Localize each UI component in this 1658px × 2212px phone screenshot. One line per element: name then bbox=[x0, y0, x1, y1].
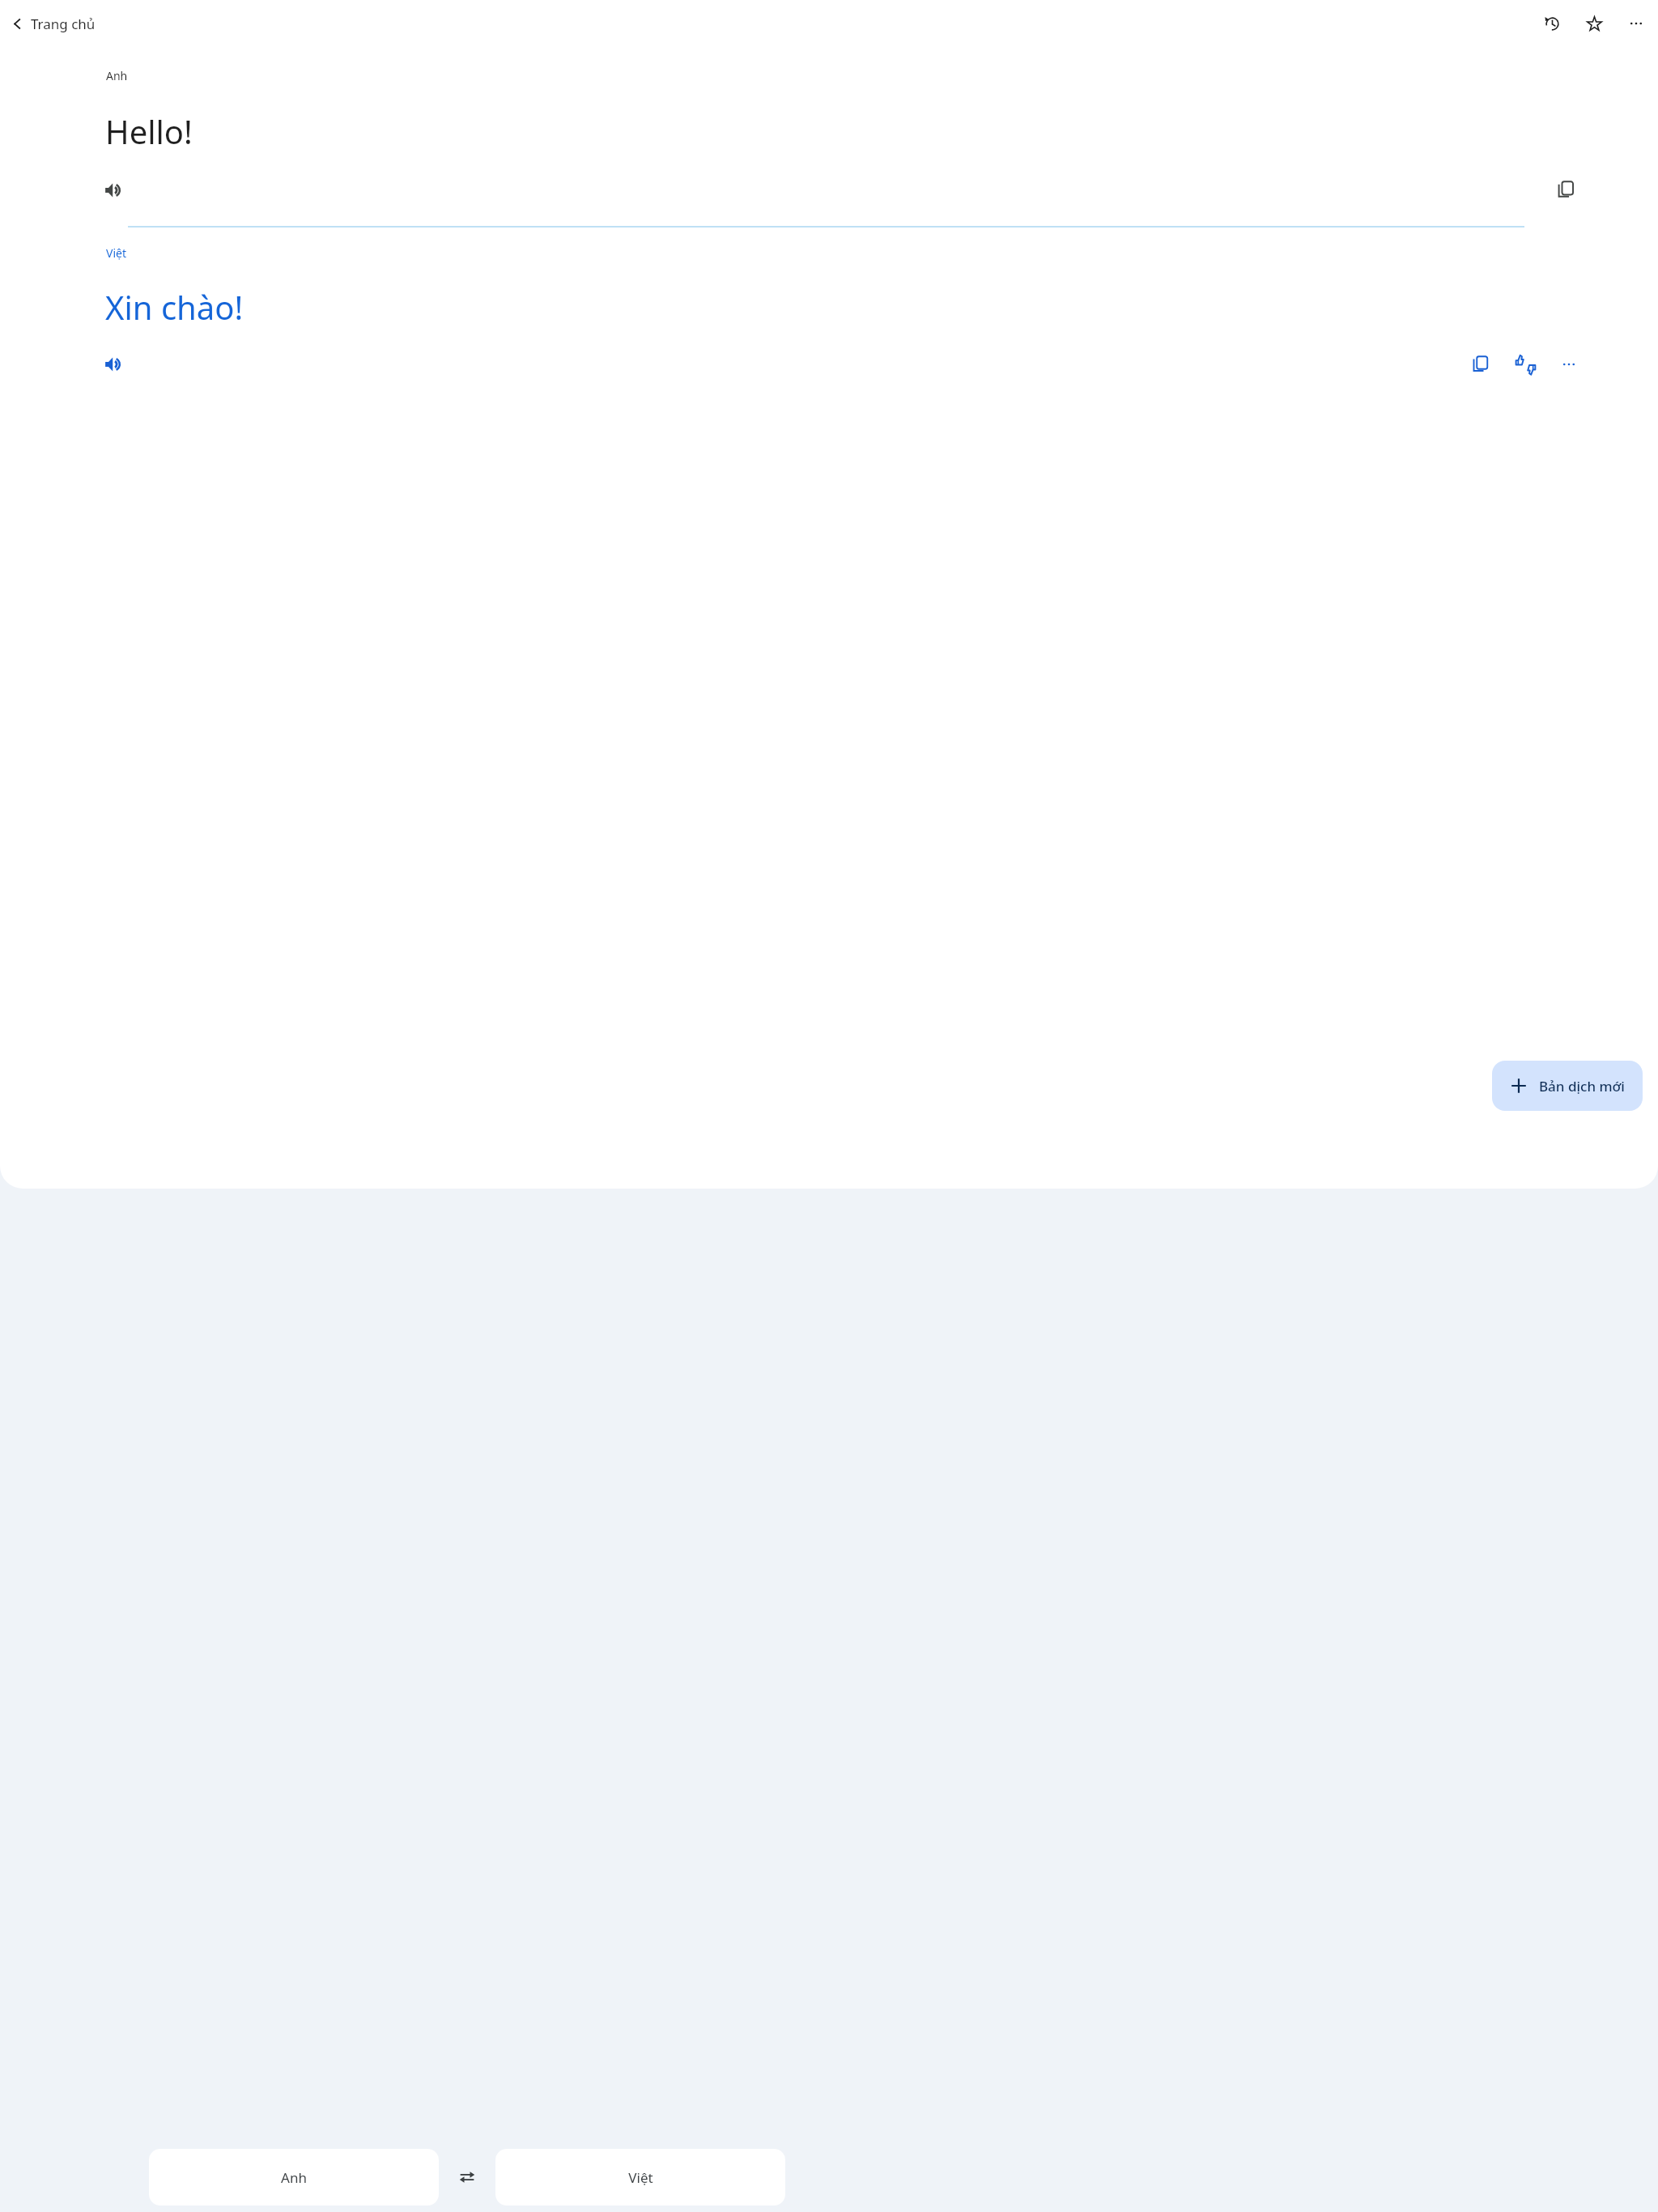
button[interactable]: Bản dịch mới bbox=[1492, 1061, 1643, 1111]
staticText: Bản dịch mới bbox=[1539, 1077, 1625, 1095]
staticText: Việt bbox=[628, 2168, 653, 2187]
button[interactable]: Hoán đổi ngôn ngữ bbox=[448, 2158, 487, 2197]
staticText: Hello! bbox=[105, 109, 193, 153]
button[interactable]: Trang chủ bbox=[3, 10, 96, 37]
button[interactable]: Đánh dấu sao bbox=[1577, 6, 1611, 40]
button[interactable]: Lịch sử bbox=[1535, 6, 1569, 40]
button[interactable]: Tùy chọn khác bbox=[1551, 347, 1587, 382]
button[interactable]: Tùy chọn khác bbox=[1619, 6, 1653, 40]
button[interactable]: Anh bbox=[149, 2149, 439, 2206]
staticText: Anh bbox=[106, 68, 128, 83]
button[interactable]: Nghe bbox=[96, 172, 131, 208]
staticText: Xin chào! bbox=[105, 285, 244, 329]
staticText: Anh bbox=[281, 2168, 307, 2187]
button[interactable]: Sao chép bbox=[1550, 172, 1585, 208]
button[interactable]: Ý kiến phản hồi bbox=[1507, 347, 1543, 382]
staticText: Việt bbox=[106, 245, 126, 261]
button[interactable]: Nghe bản dịch bbox=[96, 347, 131, 382]
staticText: Trang chủ bbox=[31, 15, 96, 33]
button[interactable]: Việt bbox=[495, 2149, 785, 2206]
button[interactable]: Sao chép bản dịch bbox=[1464, 347, 1499, 382]
